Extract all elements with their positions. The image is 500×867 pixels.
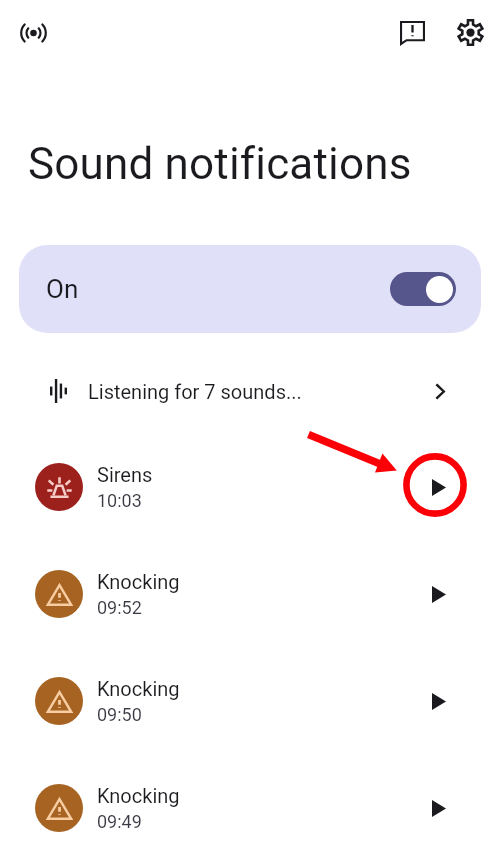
staticText: Sirens (97, 463, 153, 486)
staticText: 10:03 (97, 490, 142, 511)
staticText: 09:49 (97, 811, 142, 832)
staticText: Sound notifications (28, 138, 412, 190)
button[interactable]: Knocking (0, 540, 500, 647)
button[interactable]: Sirens (0, 433, 500, 540)
staticText: Listening for 7 sounds... (88, 380, 302, 403)
staticText: Knocking (97, 570, 180, 593)
staticText: Knocking (97, 677, 180, 700)
button[interactable]: Play sound (417, 572, 461, 616)
staticText: 09:52 (97, 597, 142, 618)
button[interactable]: Play sound (417, 786, 461, 830)
button[interactable]: On (19, 245, 481, 333)
button[interactable]: Sound notifications app (10, 9, 57, 56)
button[interactable]: Play sound (417, 679, 461, 723)
button[interactable]: Listening for 7 sounds... (0, 367, 500, 415)
button[interactable]: Play sound (417, 465, 461, 509)
staticText: 09:50 (97, 704, 142, 725)
staticText: On (46, 274, 79, 304)
button[interactable]: Settings (447, 9, 494, 56)
staticText: Knocking (97, 784, 180, 807)
button[interactable]: Send feedback (389, 9, 436, 56)
button[interactable]: Knocking (0, 754, 500, 861)
button[interactable]: Knocking (0, 647, 500, 754)
